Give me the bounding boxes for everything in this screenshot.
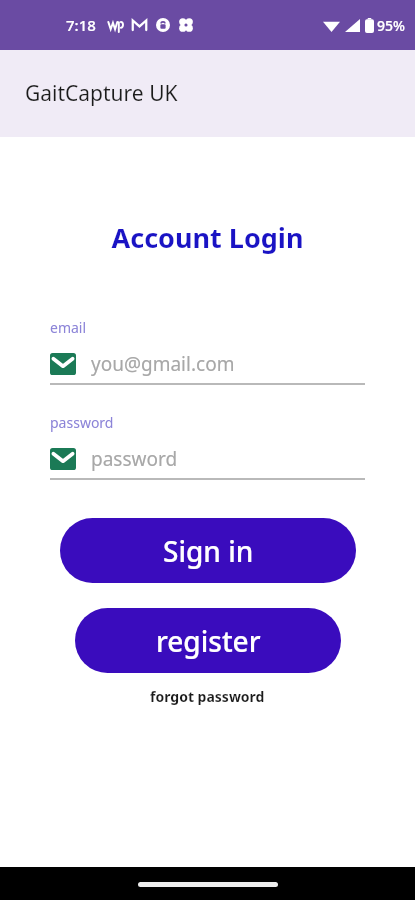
staticText: forgot password [150,687,265,706]
staticText: password [50,413,114,432]
staticText: GaitCapture UK [25,79,178,108]
button[interactable]: Sign in [60,518,356,583]
button[interactable]: register [75,608,341,673]
staticText: 7:18 [66,15,96,35]
staticText: register [156,622,261,660]
staticText: 95% [377,16,405,35]
staticText: email [50,318,87,337]
button[interactable]: forgot password [0,687,415,706]
button[interactable]: Email [50,351,365,377]
staticText: Account Login [0,219,415,256]
button[interactable]: Email [50,446,365,472]
other: Email [50,353,76,375]
staticText: you@gmail.com [91,351,235,377]
staticText: Sign in [163,532,254,570]
other: Email [50,448,76,470]
staticText: password [91,446,178,472]
